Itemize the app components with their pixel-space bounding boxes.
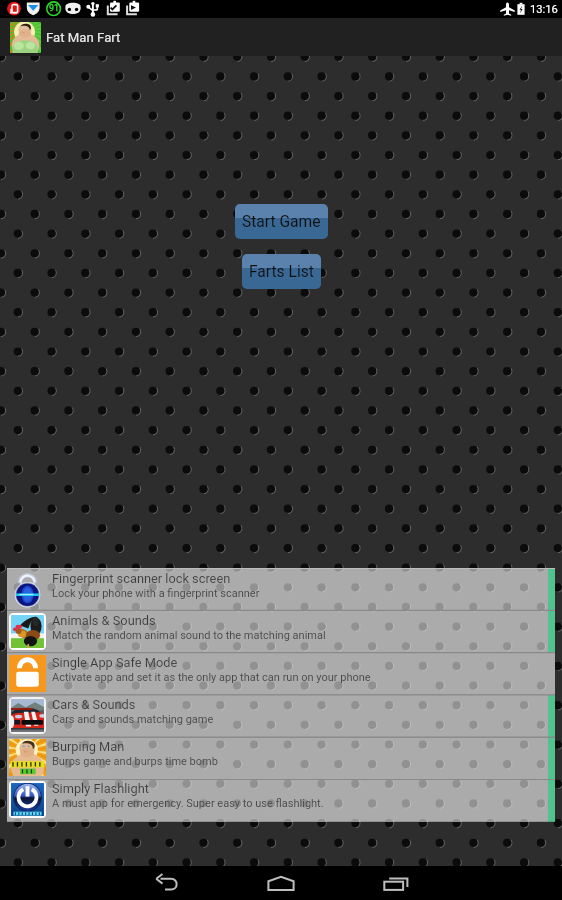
button[interactable]: Cars & Sounds xyxy=(0,694,562,736)
button[interactable]: Fingerprint scanner lock screen xyxy=(0,568,562,610)
button[interactable]: Home xyxy=(215,866,328,900)
staticText: Cars and sounds matching game xyxy=(52,713,214,726)
staticText: Simply Flashlight xyxy=(52,781,149,796)
button[interactable]: Recent apps xyxy=(328,866,441,900)
button[interactable]: Animals & Sounds xyxy=(0,610,562,652)
button[interactable]: Back xyxy=(120,866,215,900)
staticText: Animals & Sounds xyxy=(52,613,156,628)
button[interactable]: Farts List xyxy=(242,254,321,289)
staticText: 13:16 xyxy=(530,3,558,16)
button[interactable]: Single App Safe Mode xyxy=(0,652,562,694)
staticText: Lock your phone with a fingerprint scann… xyxy=(52,587,260,600)
staticText: Match the random animal sound to the mat… xyxy=(52,629,326,642)
staticText: Start Game xyxy=(242,213,321,231)
button[interactable]: Simply Flashlight xyxy=(0,778,562,820)
staticText: Cars & Sounds xyxy=(52,697,136,712)
button[interactable]: Burping Man xyxy=(0,736,562,778)
staticText: Single App Safe Mode xyxy=(52,655,178,670)
button[interactable]: Fat Man Fart app icon xyxy=(10,22,41,53)
staticText: Burping Man xyxy=(52,739,125,754)
button[interactable]: Start Game xyxy=(235,204,328,239)
staticText: A must app for emergency. Super easy to … xyxy=(52,797,324,810)
staticText: Fingerprint scanner lock screen xyxy=(52,571,231,586)
staticText: Fat Man Fart xyxy=(46,30,121,45)
staticText: Burps game and burps time bomb xyxy=(52,755,218,768)
staticText: Activate app and set it as the only app … xyxy=(52,671,371,684)
staticText: Farts List xyxy=(249,263,314,281)
staticText: 91 xyxy=(49,3,60,14)
